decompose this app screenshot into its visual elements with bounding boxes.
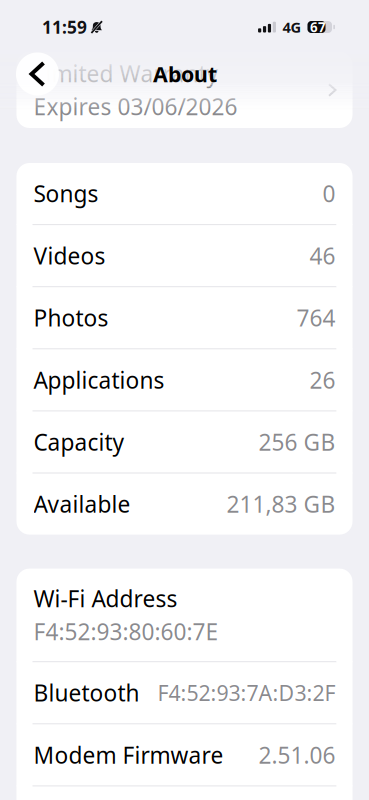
button[interactable]: Wi-Fi Address [16, 569, 352, 661]
staticText: Songs [33, 178, 98, 209]
button[interactable]: Bluetooth [16, 662, 352, 723]
staticText: Bluetooth [33, 678, 139, 708]
staticText: Applications [33, 365, 164, 395]
staticText: Videos [33, 241, 105, 271]
button[interactable]: Songs [16, 163, 352, 224]
staticText: 764 [296, 303, 335, 333]
staticText: About [153, 60, 217, 88]
staticText: 0 [322, 178, 335, 209]
staticText: 211,83 GB [226, 489, 335, 519]
staticText: Capacity [33, 427, 124, 457]
button[interactable]: Back [16, 52, 59, 95]
button[interactable]: Applications [16, 349, 352, 410]
staticText: 46 [309, 241, 335, 271]
staticText: F4:52:93:7A:D3:2F [157, 679, 335, 707]
staticText: Available [33, 489, 130, 519]
button[interactable]: Modem Firmware [16, 724, 352, 785]
button[interactable]: Available [16, 473, 352, 535]
staticText: 67 [310, 18, 326, 36]
staticText: 4G [282, 17, 301, 37]
button[interactable]: Videos [16, 225, 352, 286]
staticText: 256 GB [258, 427, 335, 457]
button[interactable]: Capacity [16, 411, 352, 472]
staticText: F4:52:93:80:60:7E [33, 616, 218, 646]
staticText: Limited Warranty [33, 58, 218, 88]
staticText: 26 [309, 365, 335, 395]
staticText: Photos [33, 303, 108, 333]
staticText: 11:59 [42, 15, 87, 38]
button[interactable]: Photos [16, 287, 352, 348]
button[interactable]: Limited Warranty [16, 52, 352, 128]
staticText: Expires 03/06/2026 [33, 91, 237, 122]
staticText: Modem Firmware [33, 740, 223, 770]
staticText: Wi-Fi Address [33, 583, 177, 613]
staticText: 2.51.06 [258, 740, 335, 770]
